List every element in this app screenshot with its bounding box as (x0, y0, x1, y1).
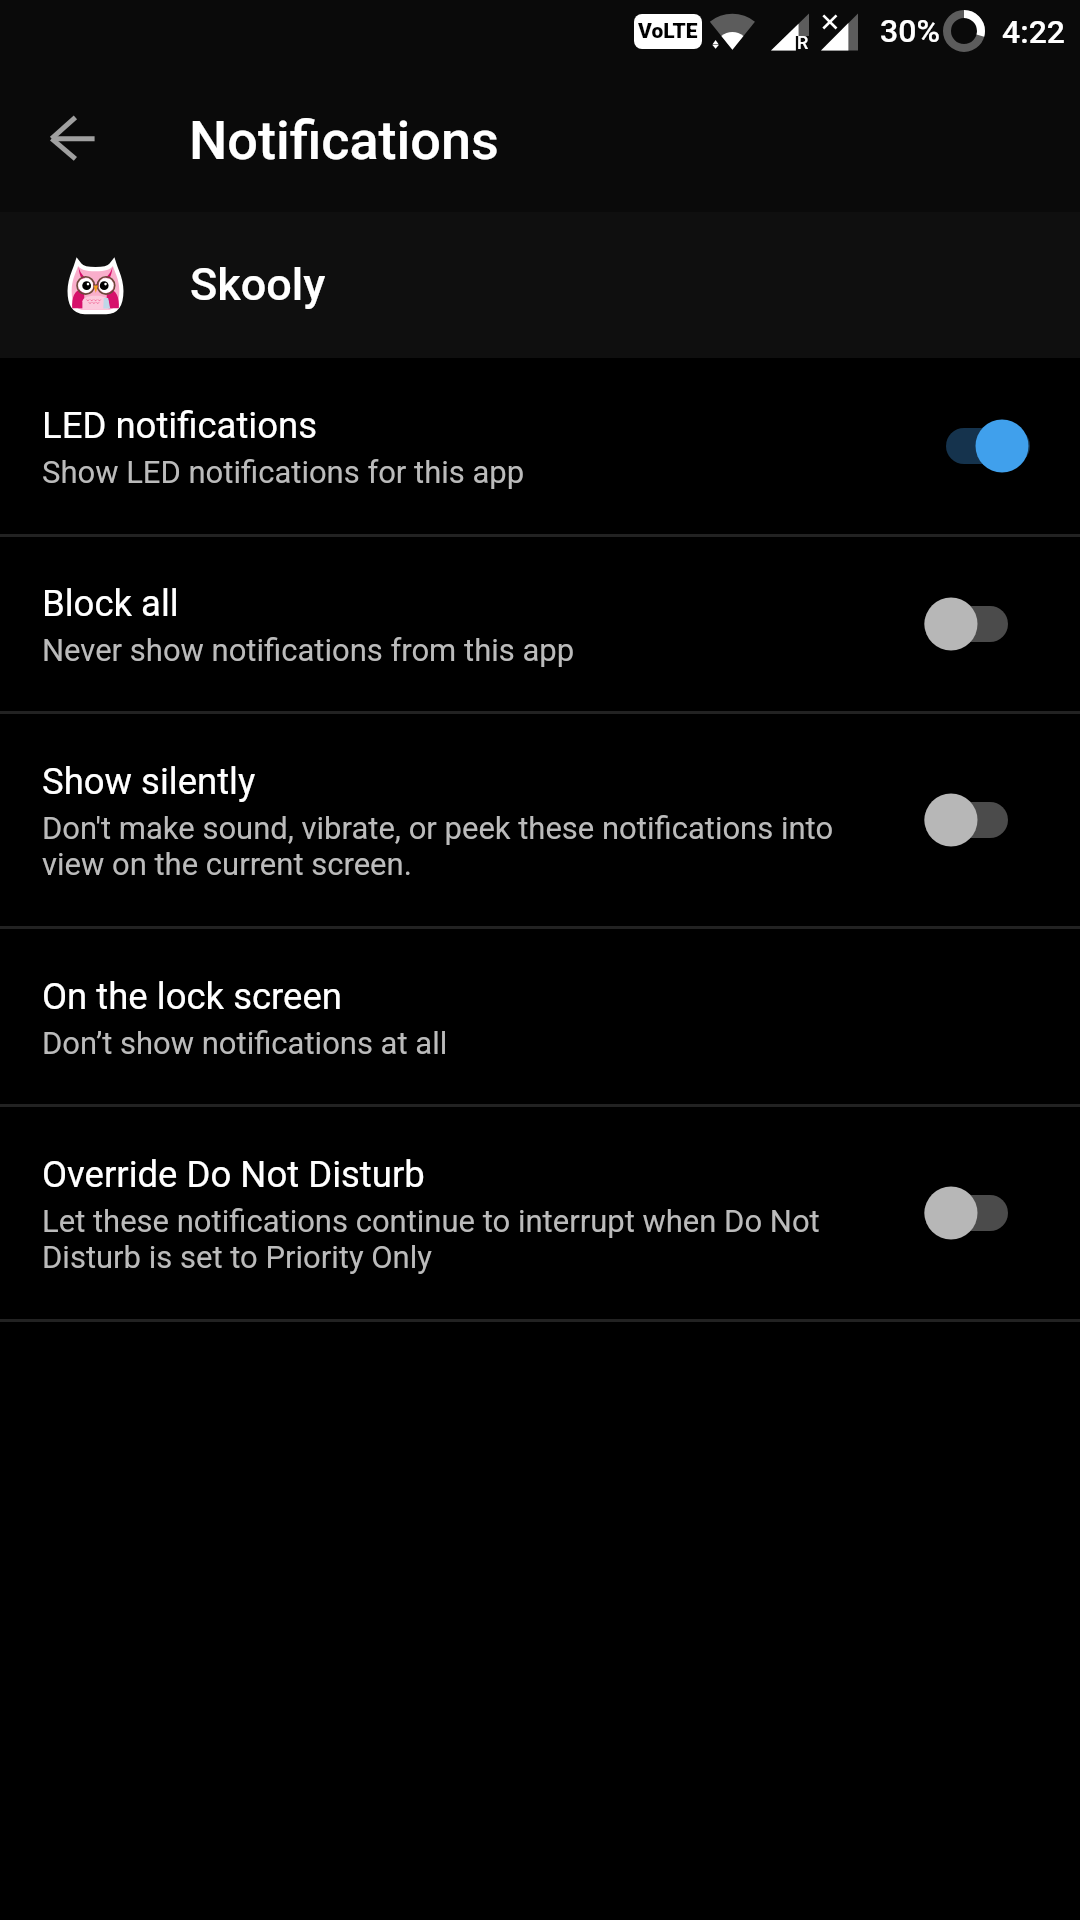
staticText: LED notifications (42, 404, 318, 447)
staticText: Show LED notifications for this app (42, 454, 525, 490)
staticText: Show silently (42, 760, 256, 803)
button[interactable]: Back (21, 97, 125, 187)
button[interactable]: LED notifications (0, 358, 1080, 534)
button[interactable]: Show silently, switch off (924, 772, 1030, 868)
staticText: Notifications (189, 109, 499, 172)
staticText: Skooly (190, 258, 326, 311)
staticText: Block all (42, 582, 179, 625)
button[interactable]: Block all (0, 537, 1080, 711)
staticText: Don’t show notifications at all (42, 1025, 448, 1061)
button[interactable]: On the lock screen (0, 929, 1080, 1104)
staticText: Don't make sound, vibrate, or peek these… (42, 810, 842, 882)
staticText: Override Do Not Disturb (42, 1153, 425, 1196)
staticText: Let these notifications continue to inte… (42, 1203, 842, 1275)
button[interactable]: Override Do Not Disturb, switch off (924, 1165, 1030, 1261)
staticText: 4:22 (1002, 13, 1065, 51)
staticText: 30% (880, 12, 940, 50)
button[interactable]: Show silently (0, 714, 1080, 926)
staticText: Never show notifications from this app (42, 632, 575, 668)
staticText: On the lock screen (42, 975, 342, 1018)
staticText: R (797, 32, 809, 53)
button[interactable]: LED notifications, switch on (924, 398, 1030, 494)
button[interactable]: Block all, switch off (924, 576, 1030, 672)
button[interactable]: Skooly (0, 212, 1080, 358)
staticText: VoLTE (638, 19, 698, 44)
button[interactable]: Override Do Not Disturb (0, 1107, 1080, 1319)
